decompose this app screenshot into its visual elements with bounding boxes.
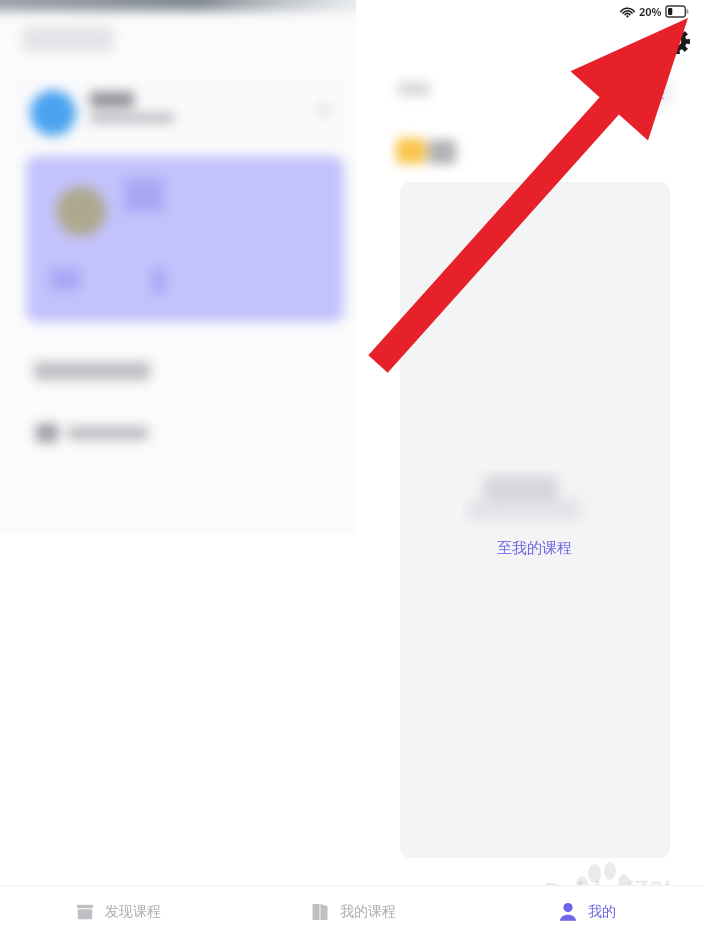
button[interactable]: 发现课程 <box>0 885 235 938</box>
staticText: 至我的课程 <box>497 539 572 558</box>
staticText: 我的 <box>588 903 616 921</box>
staticText: jingyan.baidu.com <box>544 904 666 923</box>
staticText: 我的课程 <box>340 903 396 921</box>
button[interactable]: 我的 <box>469 885 703 938</box>
button[interactable]: 至我的课程 <box>478 534 590 562</box>
staticText: Baidu 经验 <box>544 874 677 910</box>
staticText: 今天 <box>643 87 665 101</box>
staticText: 20% <box>639 4 662 19</box>
button[interactable]: Settings <box>662 26 693 57</box>
staticText: 发现课程 <box>105 903 161 921</box>
button[interactable]: 我的课程 <box>235 885 469 938</box>
